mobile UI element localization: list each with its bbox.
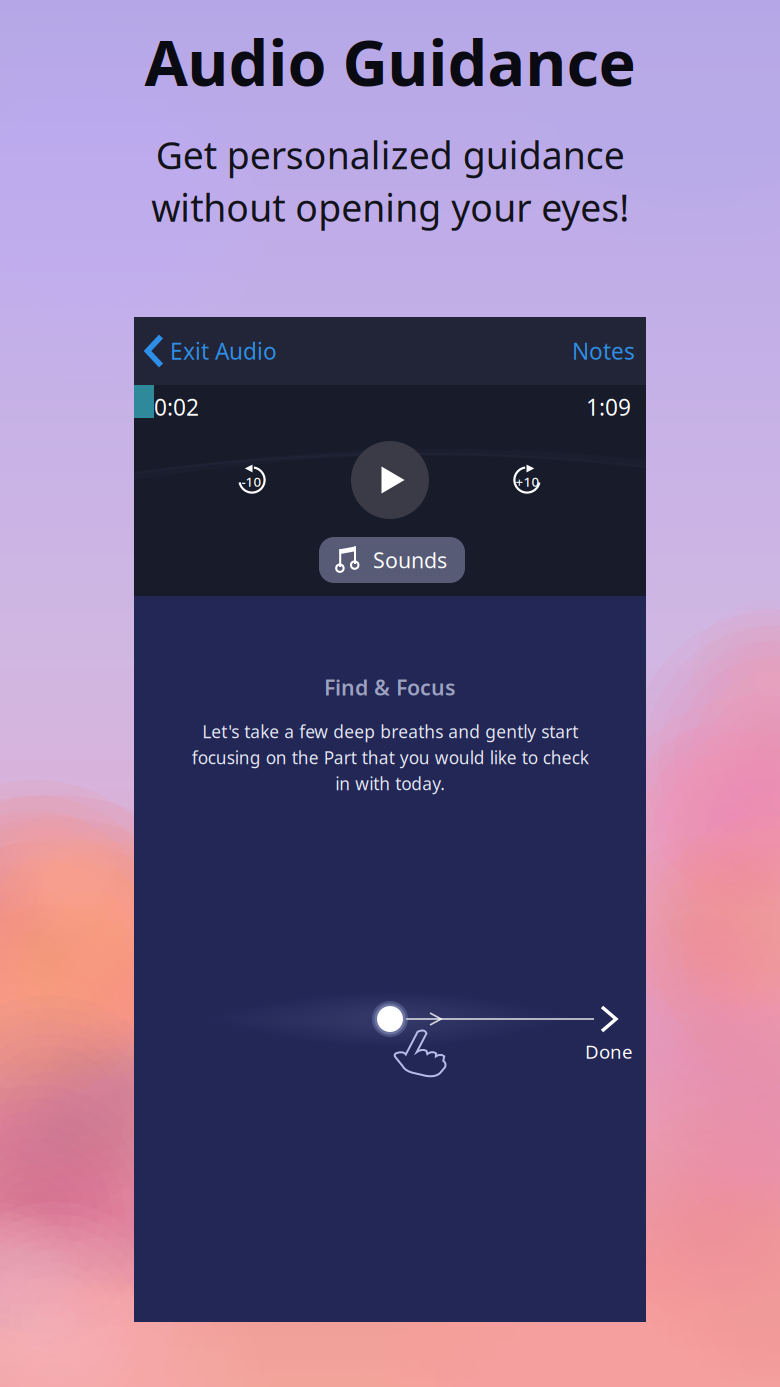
- staticText: Audio Guidance: [144, 20, 635, 103]
- staticText: Exit Audio: [170, 336, 277, 366]
- staticText: Let's take a few deep breaths and gently…: [191, 720, 588, 795]
- staticText: Sounds: [373, 546, 447, 574]
- button[interactable]: Notes: [558, 317, 649, 385]
- button[interactable]: Sounds: [319, 537, 465, 583]
- staticText: Notes: [572, 336, 635, 366]
- button[interactable]: Forward 10 seconds: [505, 458, 549, 502]
- staticText: +10: [515, 473, 539, 490]
- button[interactable]: Back 10 seconds: [230, 458, 274, 502]
- staticText: -10: [241, 473, 261, 490]
- staticText: 0:02: [154, 392, 199, 422]
- staticText: Find & Focus: [324, 673, 456, 701]
- staticText: 1:09: [586, 392, 631, 422]
- button[interactable]: Play: [351, 441, 429, 519]
- button[interactable]: Done: [574, 1005, 644, 1064]
- staticText: Done: [585, 1039, 633, 1064]
- button[interactable]: Exit Audio: [134, 317, 289, 385]
- staticText: Get personalized guidance without openin…: [151, 130, 629, 232]
